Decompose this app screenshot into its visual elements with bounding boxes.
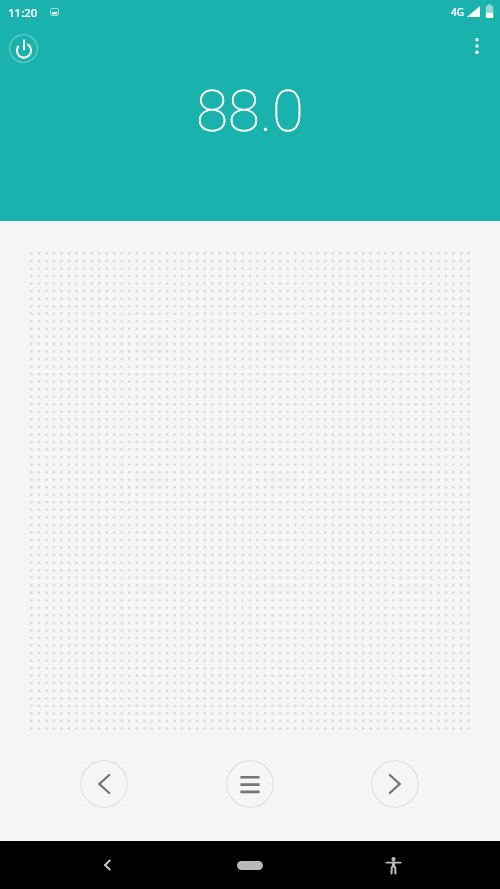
- button[interactable]: Previous: [80, 760, 128, 808]
- button[interactable]: Menu: [226, 760, 274, 808]
- staticText: 11:20: [8, 5, 38, 21]
- staticText: 4G: [451, 5, 464, 19]
- button[interactable]: More options: [459, 28, 495, 64]
- button[interactable]: Power: [8, 33, 39, 64]
- button[interactable]: Next: [371, 760, 419, 808]
- staticText: 88.0: [196, 77, 304, 145]
- button[interactable]: Accessibility: [373, 845, 413, 885]
- button[interactable]: Back: [87, 845, 127, 885]
- button[interactable]: Home: [230, 845, 270, 885]
